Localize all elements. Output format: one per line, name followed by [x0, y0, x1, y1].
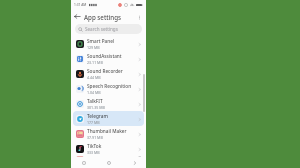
button[interactable]: Telegram	[73, 111, 144, 126]
staticText: App settings	[84, 13, 122, 21]
staticText: 301.35 MB	[87, 105, 105, 110]
staticText: 23.11 MB	[87, 60, 103, 65]
button[interactable]: Recents	[71, 157, 96, 168]
button[interactable]: Smart Panel	[73, 36, 144, 51]
button[interactable]: TalkFIT	[73, 96, 144, 111]
button[interactable]: Toolless	[73, 156, 144, 157]
button[interactable]: Back	[121, 157, 146, 168]
staticText: SoundAssistant	[87, 53, 122, 59]
button[interactable]: Speech Recognition and Synthesis fro	[73, 81, 144, 96]
button[interactable]: More options	[133, 11, 145, 23]
staticText: 177 MB	[87, 120, 100, 125]
button[interactable]: Back	[71, 10, 84, 23]
staticText: 4.44 MB	[87, 75, 101, 80]
button[interactable]: Sound Recorder	[73, 66, 144, 81]
staticText: Telegram	[87, 113, 108, 119]
staticText: TalkFIT	[87, 98, 103, 104]
staticText: TikTok	[87, 143, 102, 149]
staticText: 129 MB	[87, 45, 100, 50]
button[interactable]: Thumbnail Maker	[73, 126, 144, 141]
staticText: 333 MB	[87, 150, 100, 155]
staticText: 37.91 MB	[87, 135, 103, 140]
button[interactable]: Search settings	[75, 24, 142, 34]
staticText: Thumbnail Maker	[87, 128, 127, 134]
button[interactable]: SoundAssistant	[73, 51, 144, 66]
staticText: Smart Panel	[87, 38, 115, 44]
staticText: 1.04 MB	[87, 90, 101, 95]
staticText: Sound Recorder	[87, 68, 123, 74]
button[interactable]: Home	[96, 157, 121, 168]
staticText: 1:31 AM	[74, 3, 87, 7]
button[interactable]: TikTok	[73, 141, 144, 156]
staticText: Search settings	[85, 26, 118, 32]
staticText: Speech Recognition and Synthesis fro	[87, 83, 137, 89]
